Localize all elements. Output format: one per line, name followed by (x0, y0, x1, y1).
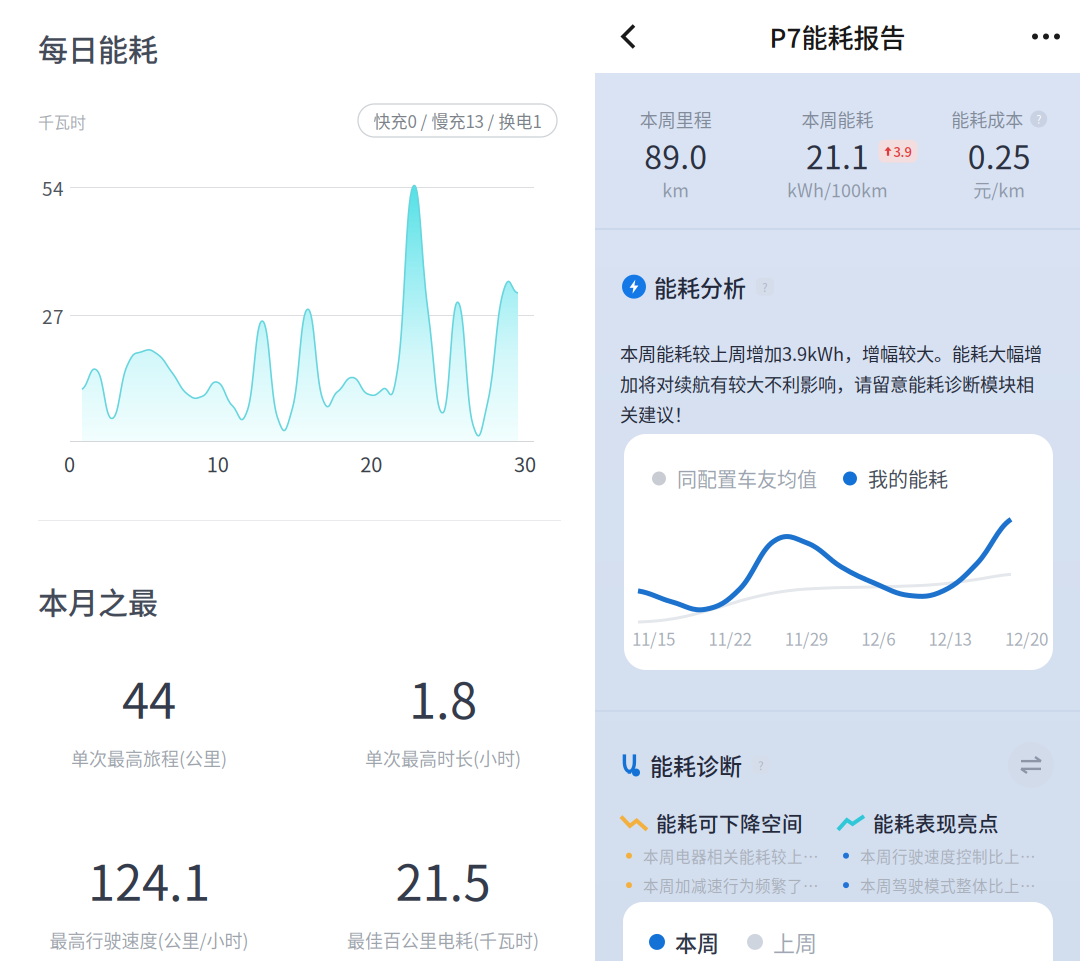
staticText: 元/km (973, 176, 1025, 202)
staticText: 千瓦时 (38, 110, 86, 133)
button[interactable]: More (1006, 0, 1072, 72)
button[interactable]: 快充0 / 慢充13 / 换电1 (358, 104, 557, 137)
staticText: 11/22 (708, 626, 751, 651)
staticText: 44 (122, 662, 176, 733)
staticText: 3.9 (893, 142, 911, 161)
staticText: 每日能耗 (38, 26, 158, 69)
staticText: 89.0 (644, 132, 707, 178)
staticText: 本周能耗 (801, 106, 873, 132)
staticText: 11/15 (632, 626, 675, 651)
staticText: 本周加减速行为频繁了些… (643, 874, 833, 896)
staticText: 12/13 (929, 626, 972, 651)
staticText: 30 (514, 449, 536, 478)
staticText: 能耗诊断 (650, 748, 742, 782)
staticText: 10 (207, 449, 229, 478)
staticText: 能耗可下降空间 (656, 808, 803, 838)
staticText: 单次最高时长(小时) (365, 745, 521, 771)
staticText: 本周电器相关能耗较上周… (643, 845, 833, 867)
staticText: 12/20 (1005, 626, 1048, 651)
staticText: 本周里程 (640, 106, 712, 132)
staticText: 能耗成本 (951, 106, 1023, 132)
staticText: 27 (42, 302, 64, 329)
staticText: 124.1 (88, 844, 210, 915)
staticText: 能耗分析 (654, 270, 746, 303)
staticText: 本周 (675, 926, 719, 958)
staticText: 20 (360, 449, 382, 478)
staticText: ? (762, 278, 768, 295)
staticText: kWh/100km (787, 176, 888, 202)
staticText: 11/29 (785, 626, 828, 651)
staticText: ? (1036, 111, 1041, 127)
staticText: 21.5 (395, 844, 490, 915)
button[interactable]: Back (603, 0, 660, 72)
staticText: 同配置车友均值 (677, 464, 817, 493)
staticText: 21.1 (806, 132, 869, 178)
staticText: 0.25 (968, 132, 1031, 178)
staticText: 快充0 / 慢充13 / 换电1 (373, 108, 541, 133)
button[interactable]: Switch view (1008, 742, 1054, 788)
staticText: P7能耗报告 (769, 18, 905, 55)
staticText: 最高行驶速度(公里/小时) (49, 927, 248, 953)
staticText: 上周 (773, 926, 817, 958)
staticText: 本周行驶速度控制比上周… (860, 845, 1050, 867)
staticText: 能耗表现亮点 (873, 808, 999, 838)
staticText: km (662, 176, 689, 202)
staticText: 最佳百公里电耗(千瓦时) (347, 927, 539, 953)
button[interactable]: Help (752, 756, 770, 774)
staticText: 本月之最 (38, 579, 158, 622)
staticText: ? (758, 756, 764, 774)
staticText: 0 (64, 449, 75, 478)
staticText: 1.8 (409, 662, 477, 733)
staticText: 本周能耗较上周增加3.9kWh，增幅较大。能耗大幅增加将对续航有较大不利影响，请… (620, 340, 1042, 427)
staticText: 12/6 (861, 626, 895, 651)
staticText: 单次最高旅程(公里) (71, 745, 227, 771)
staticText: 本周驾驶模式整体比上周… (860, 874, 1050, 896)
button[interactable]: Help (756, 278, 774, 296)
staticText: 我的能耗 (868, 464, 948, 493)
staticText: 54 (42, 174, 64, 201)
